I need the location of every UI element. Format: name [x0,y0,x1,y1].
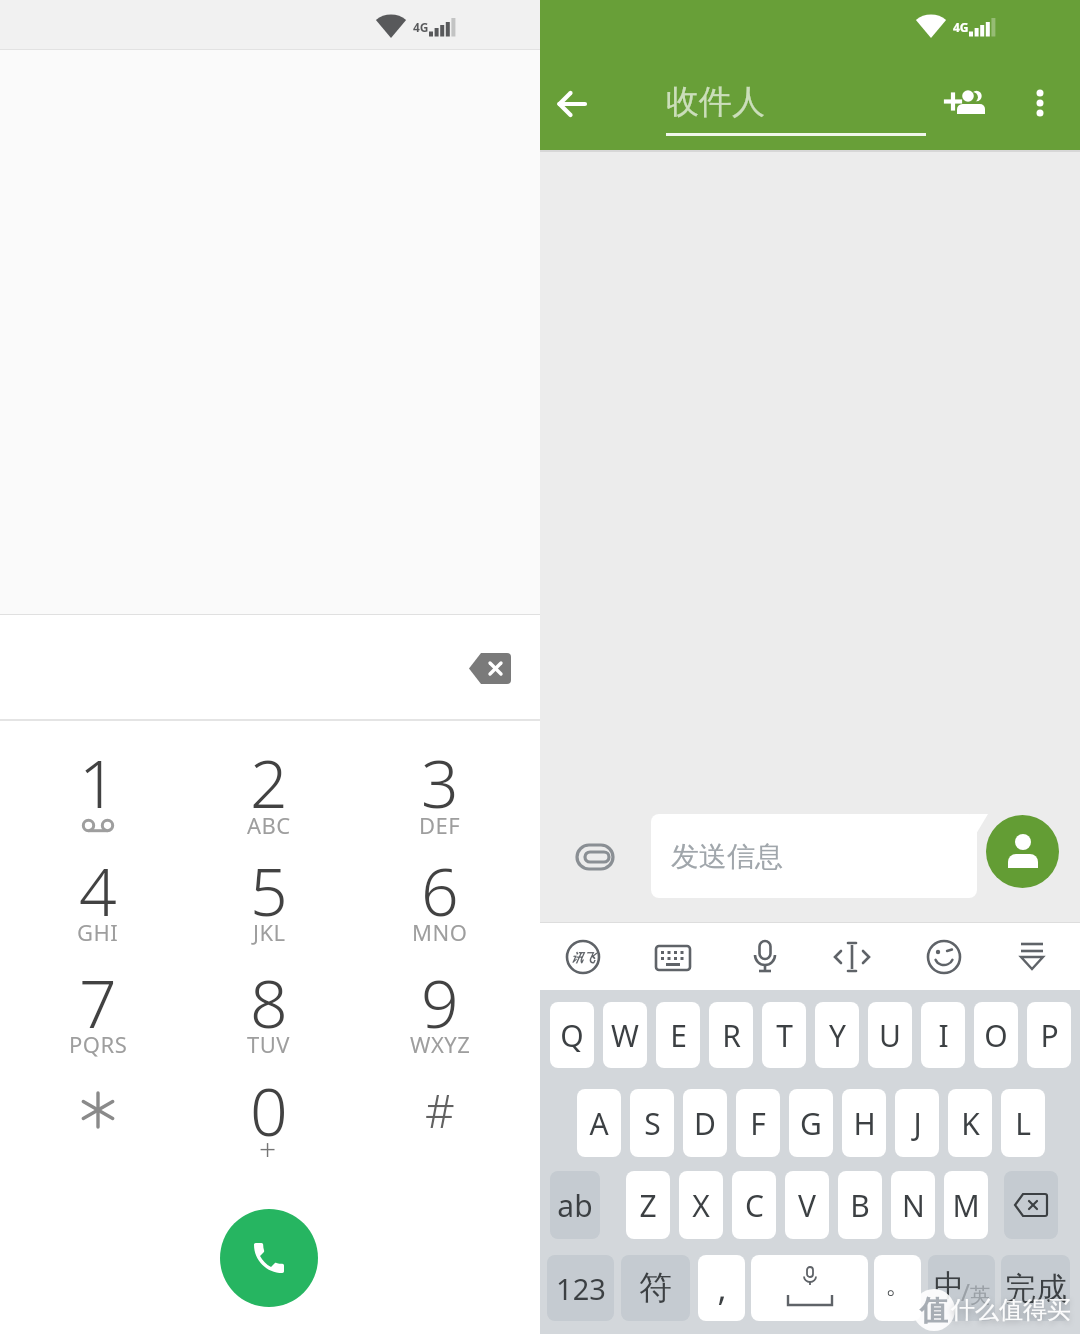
button[interactable]: L [1001,1089,1045,1157]
staticText: D [694,1103,716,1144]
staticText: C [745,1185,764,1226]
staticText: 什么值得买 [951,1295,1071,1325]
button[interactable]: H [842,1089,886,1157]
staticText: TUV [247,1029,291,1059]
button[interactable]: R [709,1002,753,1068]
button[interactable]: A [577,1089,621,1157]
staticText: G [800,1103,822,1144]
button[interactable] [640,924,706,990]
staticText: A [589,1103,609,1144]
button[interactable]: E [656,1002,700,1068]
button[interactable]: 7 [38,957,158,1047]
button[interactable]: 3 [380,737,500,827]
button[interactable]: C [732,1171,776,1239]
staticText: 0 [250,1065,288,1155]
button[interactable] [38,1070,158,1150]
staticText: X [692,1185,710,1226]
button[interactable] [940,80,990,126]
button[interactable]: # [380,1070,500,1150]
button[interactable] [911,924,977,990]
button[interactable] [220,1209,318,1307]
button[interactable]: G [789,1089,833,1157]
button[interactable]: Y [815,1002,859,1068]
button[interactable] [999,924,1065,990]
button[interactable] [986,815,1059,888]
staticText: / [961,1275,970,1308]
button[interactable]: 123 [547,1255,614,1321]
staticText: V [798,1185,816,1226]
staticText: R [722,1015,741,1056]
staticText: 完成 [1005,1269,1067,1308]
button[interactable]: ab [550,1171,600,1239]
staticText: 1 [79,737,117,827]
button[interactable]: 完成 [1001,1255,1070,1321]
button[interactable]: 1 [38,737,158,827]
staticText: M [952,1185,980,1226]
staticText: P [1040,1015,1059,1056]
button[interactable]: W [603,1002,647,1068]
staticText: + [259,1128,277,1168]
staticText: 符 [639,1267,672,1309]
button[interactable] [1004,1171,1058,1239]
button[interactable]: 。 [874,1255,921,1321]
button[interactable]: 2 [209,737,329,827]
button[interactable] [552,84,592,124]
button[interactable]: 发送信息 [651,814,977,898]
button[interactable]: N [891,1171,935,1239]
button[interactable]: 中 [928,1255,995,1321]
staticText: JKL [253,917,286,947]
staticText: 2 [250,737,288,827]
button[interactable] [751,1255,868,1321]
staticText: 4 [79,845,117,935]
button[interactable]: F [736,1089,780,1157]
button[interactable]: 9 [380,957,500,1047]
button[interactable]: 6 [380,845,500,935]
button[interactable]: B [838,1171,882,1239]
button[interactable]: T [762,1002,806,1068]
button[interactable]: S [630,1089,674,1157]
staticText: ABC [247,810,291,840]
staticText: 3 [421,737,459,827]
button[interactable]: 符 [621,1255,690,1321]
button[interactable]: P [1027,1002,1071,1068]
button[interactable]: 讯飞 [550,924,616,990]
button[interactable] [732,924,798,990]
staticText: S [644,1103,661,1144]
staticText: ab [557,1185,593,1226]
staticText: W [611,1015,639,1056]
button[interactable]: U [868,1002,912,1068]
button[interactable]: 4 [38,845,158,935]
staticText: N [902,1185,925,1226]
staticText: Y [829,1015,846,1056]
button[interactable]: , [698,1255,745,1321]
button[interactable]: I [921,1002,965,1068]
staticText: 值 [920,1293,948,1328]
button[interactable]: M [944,1171,988,1239]
staticText: F [750,1103,766,1144]
button[interactable] [462,645,518,691]
button[interactable]: X [679,1171,723,1239]
button[interactable]: Z [626,1171,670,1239]
staticText: 9 [421,957,459,1047]
staticText: 123 [556,1269,606,1308]
button[interactable] [566,828,626,886]
staticText: 收件人 [666,81,765,123]
button[interactable]: V [785,1171,829,1239]
staticText: GHI [77,917,119,947]
button[interactable]: K [948,1089,992,1157]
button[interactable] [819,924,885,990]
staticText: 5 [250,845,288,935]
staticText: 发送信息 [671,839,783,874]
button[interactable]: 0 [209,1065,329,1155]
button[interactable]: 5 [209,845,329,935]
staticText: 6 [421,845,459,935]
button[interactable]: 8 [209,957,329,1047]
staticText: 。 [885,1268,911,1301]
button[interactable]: D [683,1089,727,1157]
button[interactable] [1018,81,1062,125]
button[interactable]: O [974,1002,1018,1068]
button[interactable]: J [895,1089,939,1157]
staticText: MNO [412,917,468,947]
button[interactable]: Q [550,1002,594,1068]
staticText: U [879,1015,901,1056]
